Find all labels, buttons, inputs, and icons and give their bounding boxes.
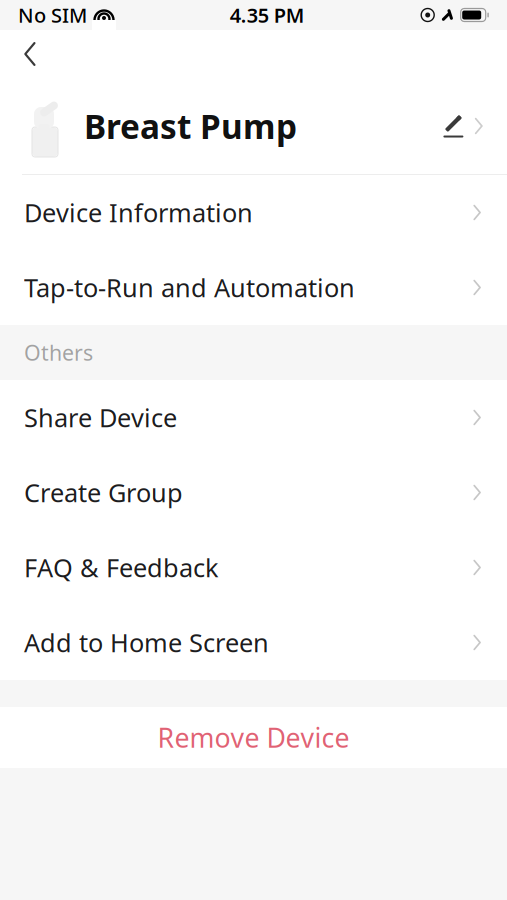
staticText: Breast Pump [84,104,297,148]
button[interactable]: Back [8,34,52,74]
button[interactable]: Breast Pump [0,78,507,174]
button[interactable]: Device Information [0,175,507,250]
staticText: Others [24,338,93,367]
staticText: Device Information [24,196,253,229]
button[interactable]: Share Device [0,380,507,455]
staticText: Tap-to-Run and Automation [24,271,355,304]
staticText: Remove Device [157,720,349,755]
staticText: Create Group [24,476,183,509]
staticText: Add to Home Screen [24,626,269,659]
button[interactable]: Tap-to-Run and Automation [0,250,507,325]
staticText: FAQ & Feedback [24,551,219,584]
button[interactable]: FAQ & Feedback [0,530,507,605]
staticText: No SIM [18,2,87,28]
staticText: Share Device [24,401,177,434]
button[interactable]: Add to Home Screen [0,605,507,680]
button[interactable]: Create Group [0,455,507,530]
staticText: 4.35 PM [230,2,305,28]
button[interactable]: Remove Device [0,707,507,768]
